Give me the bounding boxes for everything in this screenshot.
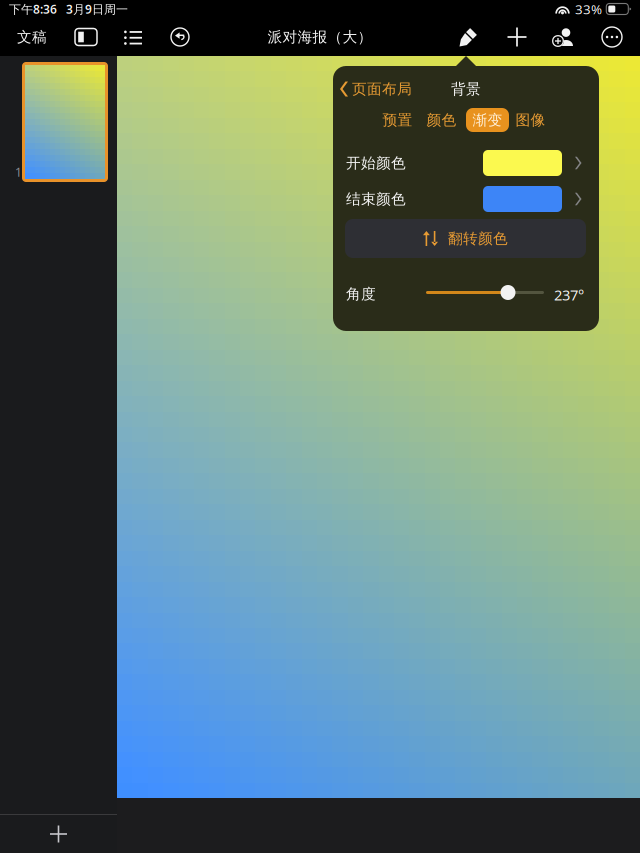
staticText: 翻转颜色 xyxy=(448,229,508,247)
staticText: 下午8:36 xyxy=(9,1,57,17)
button[interactable]: 图像 xyxy=(509,108,552,132)
staticText: 背景 xyxy=(451,80,481,98)
button[interactable]: Format xyxy=(448,18,488,56)
button[interactable]: Undo xyxy=(160,18,200,56)
button[interactable]: Sidebar xyxy=(66,18,106,56)
staticText: 文稿 xyxy=(17,28,47,46)
staticText: 结束颜色 xyxy=(346,190,406,208)
button[interactable]: 翻转颜色 xyxy=(345,219,586,258)
staticText: 页面布局 xyxy=(352,80,412,98)
staticText: 图像 xyxy=(515,111,545,129)
staticText: 1 xyxy=(15,164,22,180)
button[interactable]: Add page xyxy=(0,815,117,853)
button[interactable]: Outline xyxy=(113,18,153,56)
staticText: 33% xyxy=(575,0,602,18)
staticText: 3月9日周一 xyxy=(66,1,128,17)
staticText: 颜色 xyxy=(426,111,456,129)
button[interactable]: 渐变 xyxy=(466,108,509,132)
button[interactable]: Insert xyxy=(497,18,537,56)
staticText: 开始颜色 xyxy=(346,154,406,172)
button[interactable]: Page 1 xyxy=(22,62,108,182)
button[interactable]: 页面布局 xyxy=(337,75,415,103)
button[interactable]: 开始颜色 xyxy=(346,150,599,176)
button[interactable]: Collaborate xyxy=(543,18,583,56)
staticText: 派对海报（大） xyxy=(267,28,372,46)
button[interactable]: 预置 xyxy=(376,108,419,132)
staticText: 237° xyxy=(554,285,584,304)
staticText: 渐变 xyxy=(472,111,502,129)
button[interactable]: More xyxy=(592,18,632,56)
staticText: 角度 xyxy=(346,285,376,303)
staticText: 预置 xyxy=(382,111,412,129)
button[interactable]: 结束颜色 xyxy=(346,186,599,212)
button[interactable]: 文稿 xyxy=(7,18,57,56)
button[interactable]: 颜色 xyxy=(420,108,463,132)
